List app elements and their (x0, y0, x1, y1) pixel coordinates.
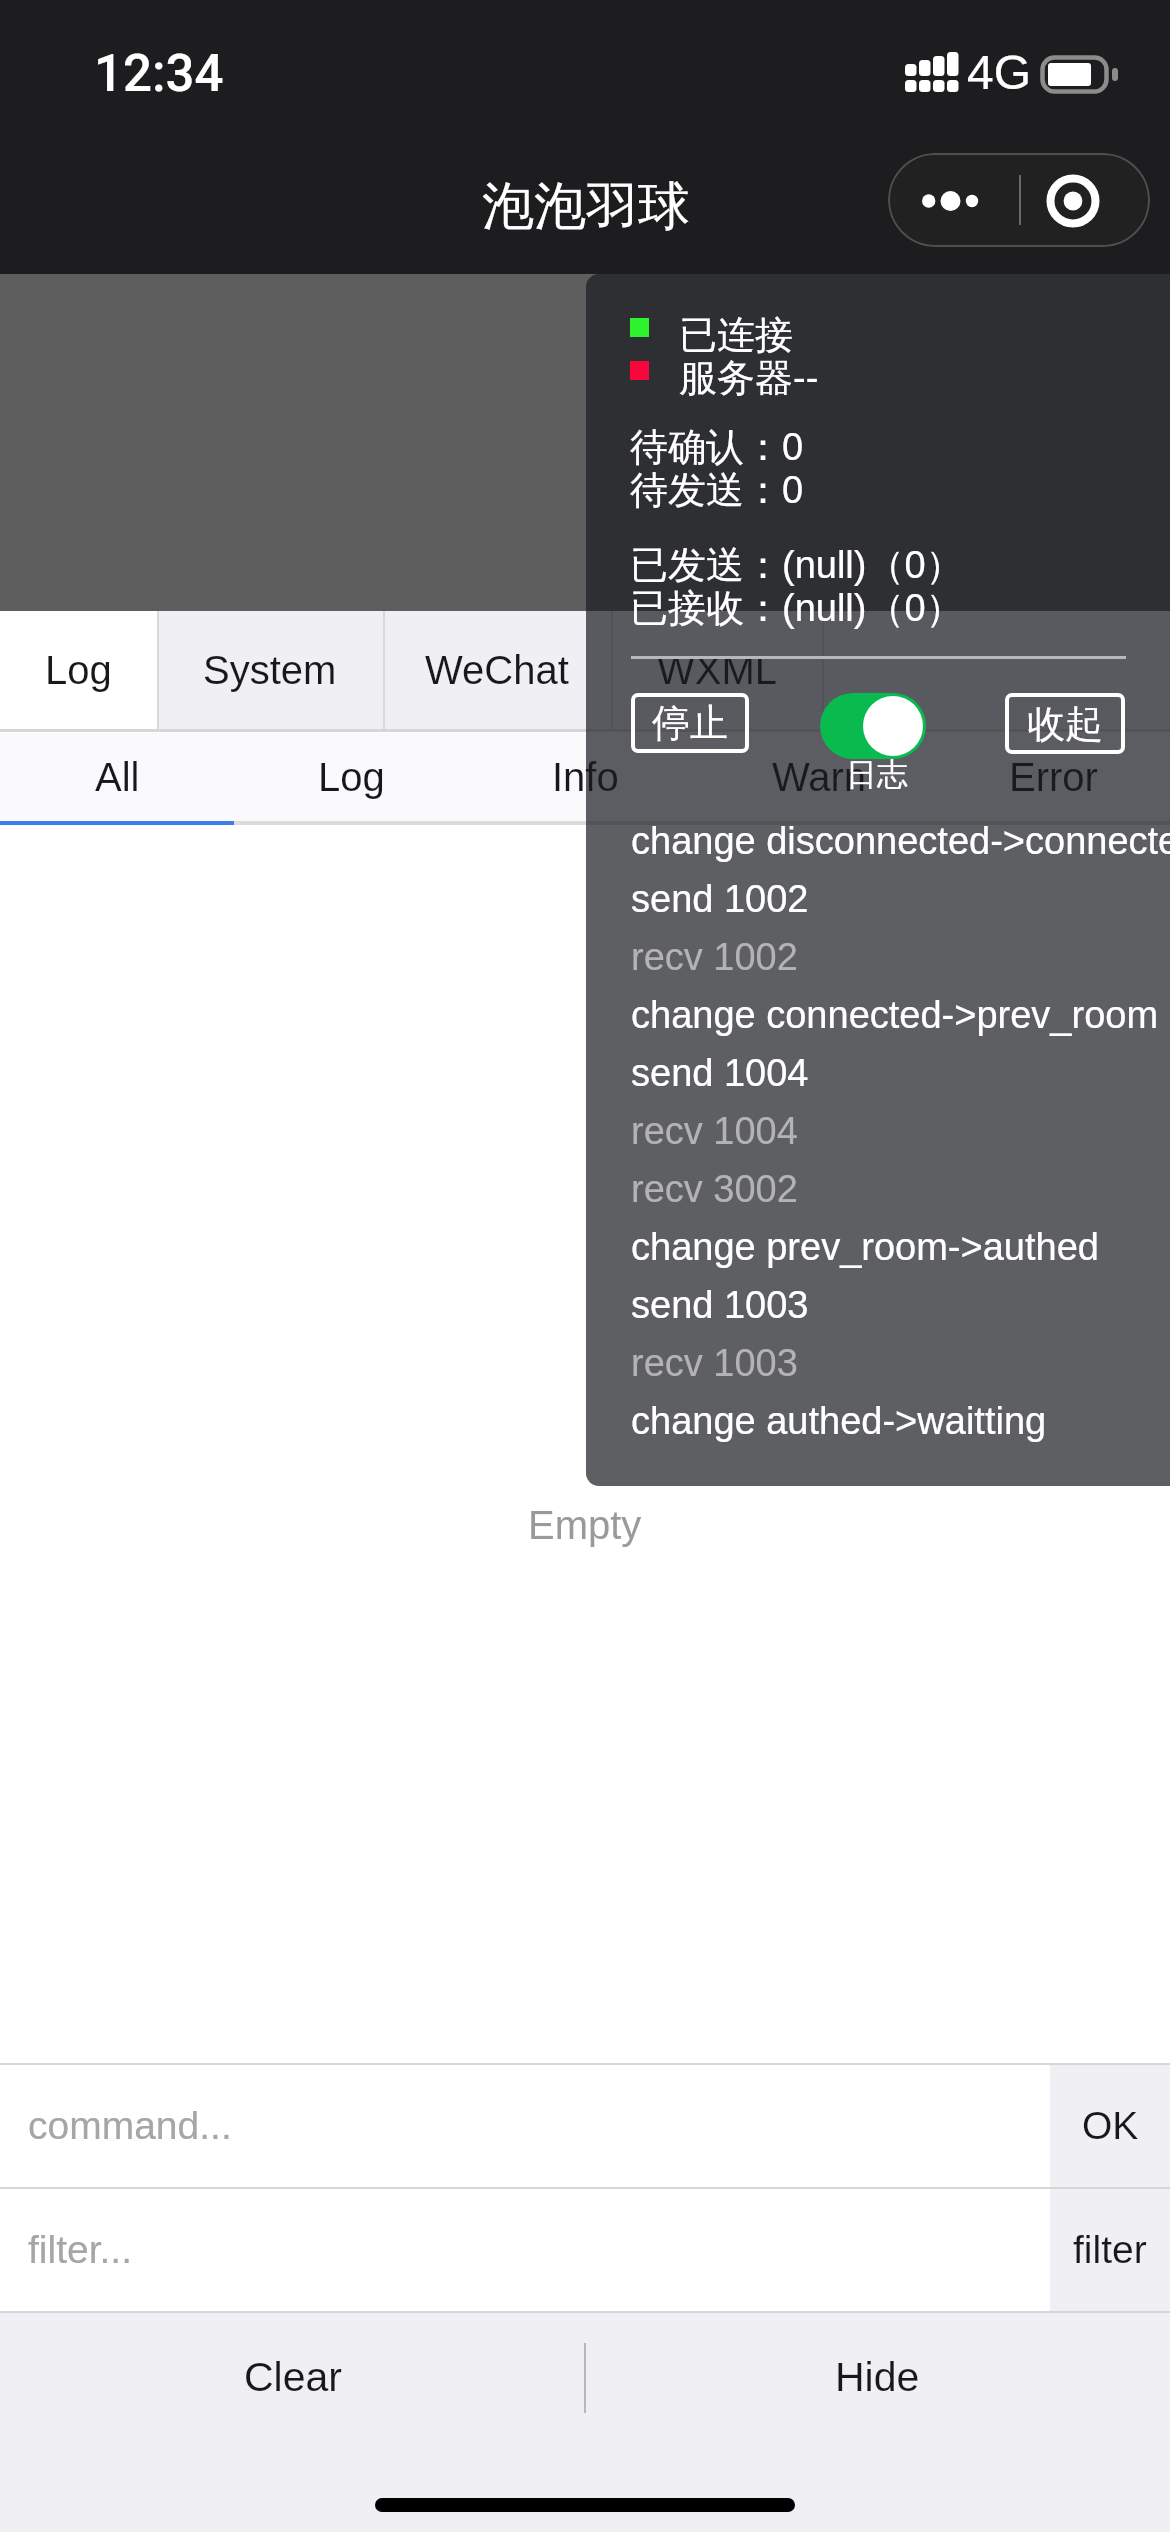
staticText: send 1004 (631, 1052, 809, 1094)
staticText: 12:34 (94, 44, 224, 104)
staticText: 停止 (652, 699, 728, 747)
staticText: Error (1009, 755, 1098, 800)
staticText: WXML (657, 648, 777, 693)
staticText: send 1003 (631, 1284, 809, 1326)
staticText: change connected->prev_room (631, 994, 1159, 1036)
staticText: System (203, 648, 337, 693)
button[interactable]: 收起 (1005, 693, 1125, 754)
staticText: Empty (528, 1503, 642, 1548)
button[interactable]: Toggle logging (820, 693, 926, 759)
button[interactable]: filter... (0, 2189, 1050, 2311)
staticText: 收起 (1027, 700, 1103, 748)
staticText: send 1002 (631, 878, 809, 920)
staticText: change disconnected->connected (631, 820, 1170, 862)
staticText: 泡泡羽球 (482, 174, 690, 240)
button[interactable]: Log (234, 733, 468, 821)
staticText: 服务器-- (679, 354, 819, 402)
staticText: Warn (772, 755, 867, 800)
button[interactable]: WeChat (383, 611, 611, 729)
button[interactable]: Hide (585, 2313, 1170, 2441)
staticText: WeChat (425, 648, 569, 693)
staticText: Log (318, 755, 385, 800)
staticText: 日志 (846, 755, 908, 794)
button[interactable]: 停止 (631, 693, 749, 753)
button[interactable]: All (0, 733, 234, 821)
button[interactable]: command... (0, 2065, 1050, 2187)
staticText: recv 1004 (631, 1110, 798, 1152)
button[interactable]: Warn (702, 733, 936, 821)
button[interactable]: 已连接 (586, 274, 1170, 1486)
staticText: recv 1003 (631, 1342, 798, 1384)
button[interactable]: filter (1050, 2189, 1170, 2311)
staticText: command... (28, 2104, 232, 2148)
button[interactable]: OK (1050, 2065, 1170, 2187)
staticText: 已接收：(null)（0） (630, 584, 964, 632)
button[interactable]: Error (936, 733, 1170, 821)
staticText: 待确认：0 (630, 423, 804, 471)
staticText: Hide (835, 2354, 920, 2400)
staticText: Info (552, 755, 619, 800)
button[interactable]: WXML (611, 611, 822, 729)
staticText: Log (45, 648, 112, 693)
button[interactable]: System (157, 611, 383, 729)
button[interactable]: Log (0, 611, 157, 729)
staticText: Clear (244, 2354, 342, 2400)
staticText: 已发送：(null)（0） (630, 541, 964, 589)
button[interactable]: Clear (0, 2313, 585, 2441)
staticText: 4G (967, 46, 1032, 100)
staticText: All (95, 755, 140, 800)
button[interactable]: More options (888, 153, 1019, 247)
staticText: recv 1002 (631, 936, 798, 978)
button[interactable]: Info (468, 733, 702, 821)
button[interactable] (822, 611, 1170, 729)
staticText: recv 3002 (631, 1168, 798, 1210)
button[interactable]: Close mini program (1021, 153, 1150, 247)
staticText: 已连接 (679, 311, 793, 359)
staticText: change prev_room->authed (631, 1226, 1099, 1268)
staticText: OK (1082, 2104, 1139, 2148)
staticText: 待发送：0 (630, 466, 804, 514)
staticText: change authed->waitting (631, 1400, 1047, 1442)
staticText: filter... (28, 2228, 133, 2272)
staticText: filter (1073, 2228, 1147, 2272)
